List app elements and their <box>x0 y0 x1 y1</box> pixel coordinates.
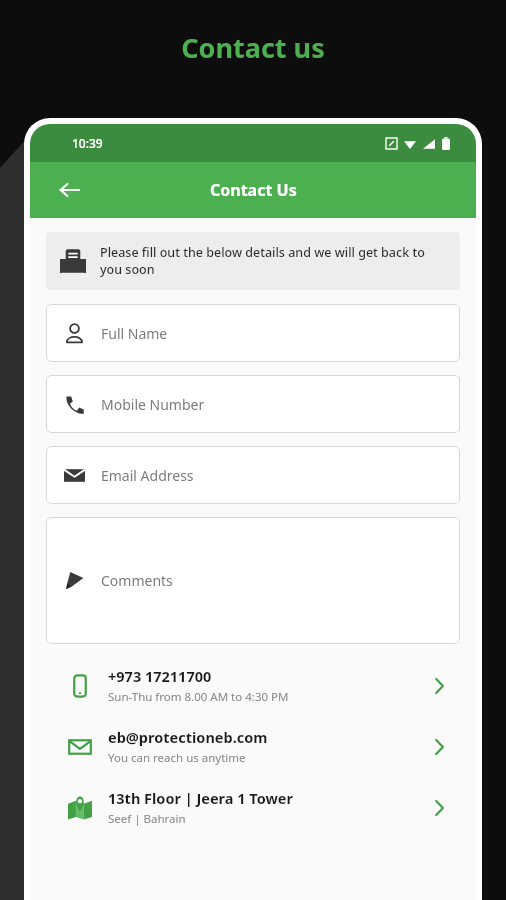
staticText: Comments <box>101 571 173 590</box>
staticText: Mobile Number <box>101 395 205 414</box>
button[interactable]: eb@protectioneb.com <box>46 727 460 766</box>
button[interactable]: Comments <box>46 517 460 644</box>
button[interactable]: Please fill out the below details and we… <box>46 232 460 290</box>
button[interactable]: Back <box>52 173 86 207</box>
staticText: 10:39 <box>72 135 103 151</box>
staticText: Seef | Bahrain <box>108 811 186 827</box>
staticText: Email Address <box>101 466 194 485</box>
staticText: You can reach us anytime <box>108 750 246 766</box>
staticText: Contact Us <box>210 179 297 201</box>
button[interactable]: 13th Floor | Jeera 1 Tower <box>46 788 460 827</box>
staticText: eb@protectioneb.com <box>108 727 268 747</box>
staticText: Sun-Thu from 8.00 AM to 4:30 PM <box>108 689 289 705</box>
staticText: Contact us <box>181 29 325 66</box>
button[interactable]: Full Name <box>46 304 460 362</box>
staticText: Please fill out the below details and we… <box>100 244 446 278</box>
button[interactable]: Back <box>30 162 476 218</box>
staticText: 13th Floor | Jeera 1 Tower <box>108 788 293 808</box>
button[interactable]: Email Address <box>46 446 460 504</box>
button[interactable]: +973 17211700 <box>46 666 460 705</box>
button[interactable]: Mobile Number <box>46 375 460 433</box>
staticText: Full Name <box>101 324 168 343</box>
staticText: +973 17211700 <box>108 666 212 686</box>
